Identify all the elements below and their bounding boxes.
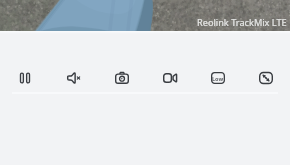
button[interactable]: Stream quality Low	[194, 56, 242, 100]
button[interactable]: Record	[146, 56, 194, 100]
button[interactable]: Mute	[49, 56, 98, 100]
staticText: Low	[212, 75, 224, 82]
staticText: Reolink TrackMix LTE	[197, 16, 287, 29]
button[interactable]: Fullscreen	[242, 56, 290, 100]
button[interactable]: Pause	[0, 56, 49, 100]
button[interactable]: Snapshot	[98, 56, 146, 100]
